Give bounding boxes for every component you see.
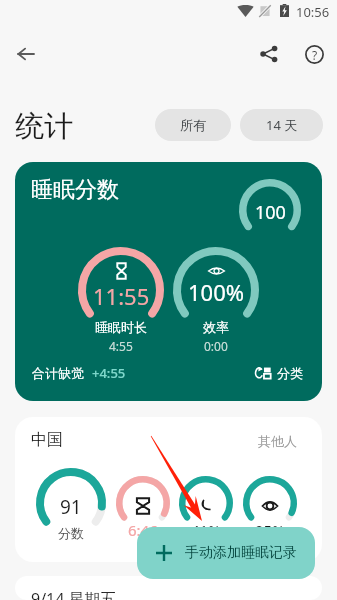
staticText: ? xyxy=(312,47,318,63)
staticText: 6:46 xyxy=(128,520,158,540)
button[interactable]: 手动添加睡眠记录 xyxy=(137,527,315,579)
button[interactable]: 睡眠分数 xyxy=(15,162,322,401)
staticText: 分数 xyxy=(58,525,84,541)
staticText: 91 xyxy=(60,494,82,520)
staticText: 14 天 xyxy=(266,116,298,134)
staticText: 其他人 xyxy=(258,433,297,449)
button[interactable]: 所有 xyxy=(155,109,231,141)
staticText: 手动添加睡眠记录 xyxy=(185,544,297,562)
staticText: 效率 xyxy=(203,319,229,335)
staticText: 9/14 星期五 xyxy=(31,588,117,600)
button[interactable]: 9/14 星期五 xyxy=(15,576,322,600)
staticText: 睡眠分数 xyxy=(31,176,119,204)
staticText: 分类 xyxy=(277,365,303,381)
staticText: 统计 xyxy=(15,108,73,145)
staticText: 中国 xyxy=(31,430,63,450)
staticText: 所有 xyxy=(180,117,206,133)
staticText: 11:55 xyxy=(93,281,150,311)
staticText: 10:56 xyxy=(296,3,330,21)
button[interactable]: 14 天 xyxy=(240,109,323,141)
button[interactable]: Share xyxy=(251,36,287,72)
button[interactable]: Help xyxy=(296,36,332,72)
staticText: 95% xyxy=(255,520,285,540)
staticText: 4:55 xyxy=(109,338,133,354)
staticText: 睡眠时长 xyxy=(95,319,147,335)
staticText: 100% xyxy=(188,277,245,307)
staticText: 100 xyxy=(255,200,286,225)
staticText: 41% xyxy=(191,520,221,540)
button[interactable]: 中国 xyxy=(15,417,322,562)
staticText: 0:00 xyxy=(204,338,228,354)
button[interactable]: Back xyxy=(8,36,44,72)
button[interactable]: 分类 xyxy=(255,365,309,381)
staticText: 合计缺觉 xyxy=(32,365,84,381)
staticText: +4:55 xyxy=(92,364,126,382)
